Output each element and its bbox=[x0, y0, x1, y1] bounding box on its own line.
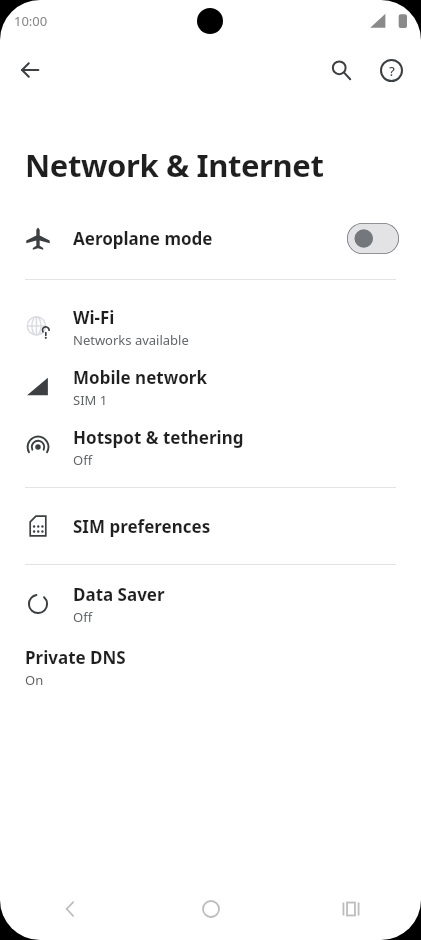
staticText: Network & Internet bbox=[25, 144, 324, 186]
staticText: SIM 1 bbox=[73, 391, 108, 409]
staticText: 10:00 bbox=[14, 12, 48, 30]
staticText: Off bbox=[73, 451, 93, 469]
button[interactable]: Private DNS bbox=[0, 634, 421, 694]
staticText: Hotspot & tethering bbox=[73, 426, 244, 449]
button[interactable]: Aeroplane mode toggle bbox=[347, 223, 399, 254]
staticText: Wi-Fi bbox=[73, 306, 115, 329]
staticText: Off bbox=[73, 608, 93, 626]
button[interactable]: Home bbox=[141, 878, 281, 940]
staticText: SIM preferences bbox=[73, 515, 211, 538]
button[interactable]: Aeroplane mode bbox=[0, 214, 421, 262]
button[interactable]: Mobile network bbox=[0, 357, 421, 417]
button[interactable]: Data Saver bbox=[0, 574, 421, 634]
staticText: Private DNS bbox=[25, 646, 126, 669]
button[interactable]: Back bbox=[0, 878, 141, 940]
staticText: Data Saver bbox=[73, 583, 165, 606]
staticText: Mobile network bbox=[73, 366, 208, 389]
staticText: Networks available bbox=[73, 331, 189, 349]
button[interactable]: Help bbox=[369, 48, 413, 92]
button[interactable]: Hotspot & tethering bbox=[0, 417, 421, 477]
staticText: Aeroplane mode bbox=[73, 227, 347, 250]
staticText: On bbox=[25, 671, 44, 689]
staticText: ? bbox=[389, 62, 395, 80]
button[interactable]: Back bbox=[8, 48, 52, 92]
button[interactable]: Recent apps bbox=[281, 878, 421, 940]
button[interactable]: Wi-Fi bbox=[0, 297, 421, 357]
button[interactable]: SIM preferences bbox=[0, 497, 421, 555]
button[interactable]: Search bbox=[319, 48, 363, 92]
